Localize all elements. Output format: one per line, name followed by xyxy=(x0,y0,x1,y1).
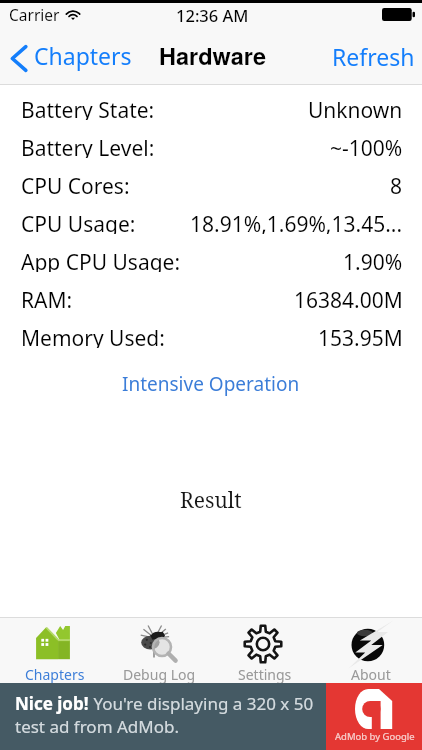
button[interactable]: Refresh xyxy=(332,43,422,74)
staticText: App CPU Usage: xyxy=(21,248,181,272)
staticText: Hardware xyxy=(159,39,267,73)
staticText: 12:36 AM xyxy=(176,4,249,26)
staticText: ~-100% xyxy=(330,134,403,158)
button[interactable]: Intensive Operation xyxy=(116,369,306,399)
staticText: AdMob by Google xyxy=(335,730,415,743)
staticText: Nice job! xyxy=(15,692,89,715)
button[interactable]: Back xyxy=(0,32,132,84)
staticText: You're displaying a 320 x 50 xyxy=(89,692,314,715)
staticText: Debug Log xyxy=(123,665,196,684)
staticText: Carrier xyxy=(9,4,60,25)
staticText: Chapters xyxy=(25,665,85,684)
button[interactable]: Debug Log xyxy=(105,618,210,684)
other: Back xyxy=(10,45,28,72)
button[interactable]: Nice job! xyxy=(0,683,326,750)
staticText: 18.91%,1.69%,13.45... xyxy=(190,210,403,234)
staticText: CPU Cores: xyxy=(21,172,130,196)
button[interactable]: Chapters xyxy=(0,618,105,684)
other: AdMob xyxy=(355,689,395,729)
staticText: test ad from AdMob. xyxy=(15,715,179,738)
button[interactable]: Settings xyxy=(210,618,316,684)
staticText: Chapters xyxy=(34,40,132,71)
staticText: Settings xyxy=(238,665,292,684)
staticText: Memory Used: xyxy=(21,324,165,348)
staticText: Result xyxy=(180,486,242,512)
staticText: 1.90% xyxy=(343,248,403,272)
staticText: 153.95M xyxy=(318,324,403,348)
staticText: About xyxy=(351,665,391,684)
staticText: Unknown xyxy=(308,96,403,120)
button[interactable]: AdMob xyxy=(326,683,422,750)
staticText: RAM: xyxy=(21,286,73,310)
staticText: 8 xyxy=(390,172,403,196)
staticText: 16384.00M xyxy=(294,286,403,310)
button[interactable]: About xyxy=(316,618,422,684)
staticText: Battery State: xyxy=(21,96,155,120)
staticText: CPU Usage: xyxy=(21,210,136,234)
staticText: Battery Level: xyxy=(21,134,155,158)
